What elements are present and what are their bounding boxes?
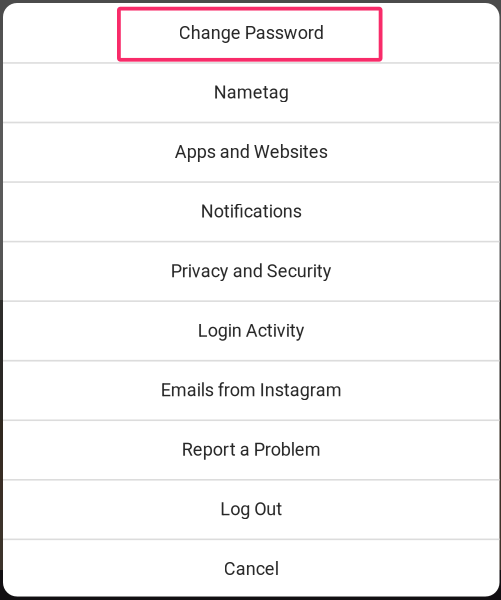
staticText: Apps and Websites <box>175 141 328 162</box>
button[interactable]: Log Out <box>3 479 499 539</box>
staticText: Change Password <box>179 22 324 43</box>
staticText: Cancel <box>224 558 279 579</box>
button[interactable]: Login Activity <box>3 301 499 360</box>
button[interactable]: Apps and Websites <box>3 122 499 182</box>
button[interactable]: Privacy and Security <box>3 241 499 301</box>
staticText: Privacy and Security <box>171 260 332 281</box>
staticText: Log Out <box>220 499 282 520</box>
button[interactable]: Cancel <box>3 539 499 598</box>
staticText: Notifications <box>201 201 302 222</box>
staticText: Nametag <box>214 82 289 103</box>
staticText: Login Activity <box>198 320 305 341</box>
staticText: Emails from Instagram <box>161 379 342 401</box>
button[interactable]: Notifications <box>3 182 499 241</box>
button[interactable]: Nametag <box>3 62 499 122</box>
button[interactable]: Report a Problem <box>3 420 499 479</box>
staticText: Report a Problem <box>182 439 321 460</box>
button[interactable]: Change Password <box>3 3 499 62</box>
button[interactable]: Emails from Instagram <box>3 360 499 420</box>
